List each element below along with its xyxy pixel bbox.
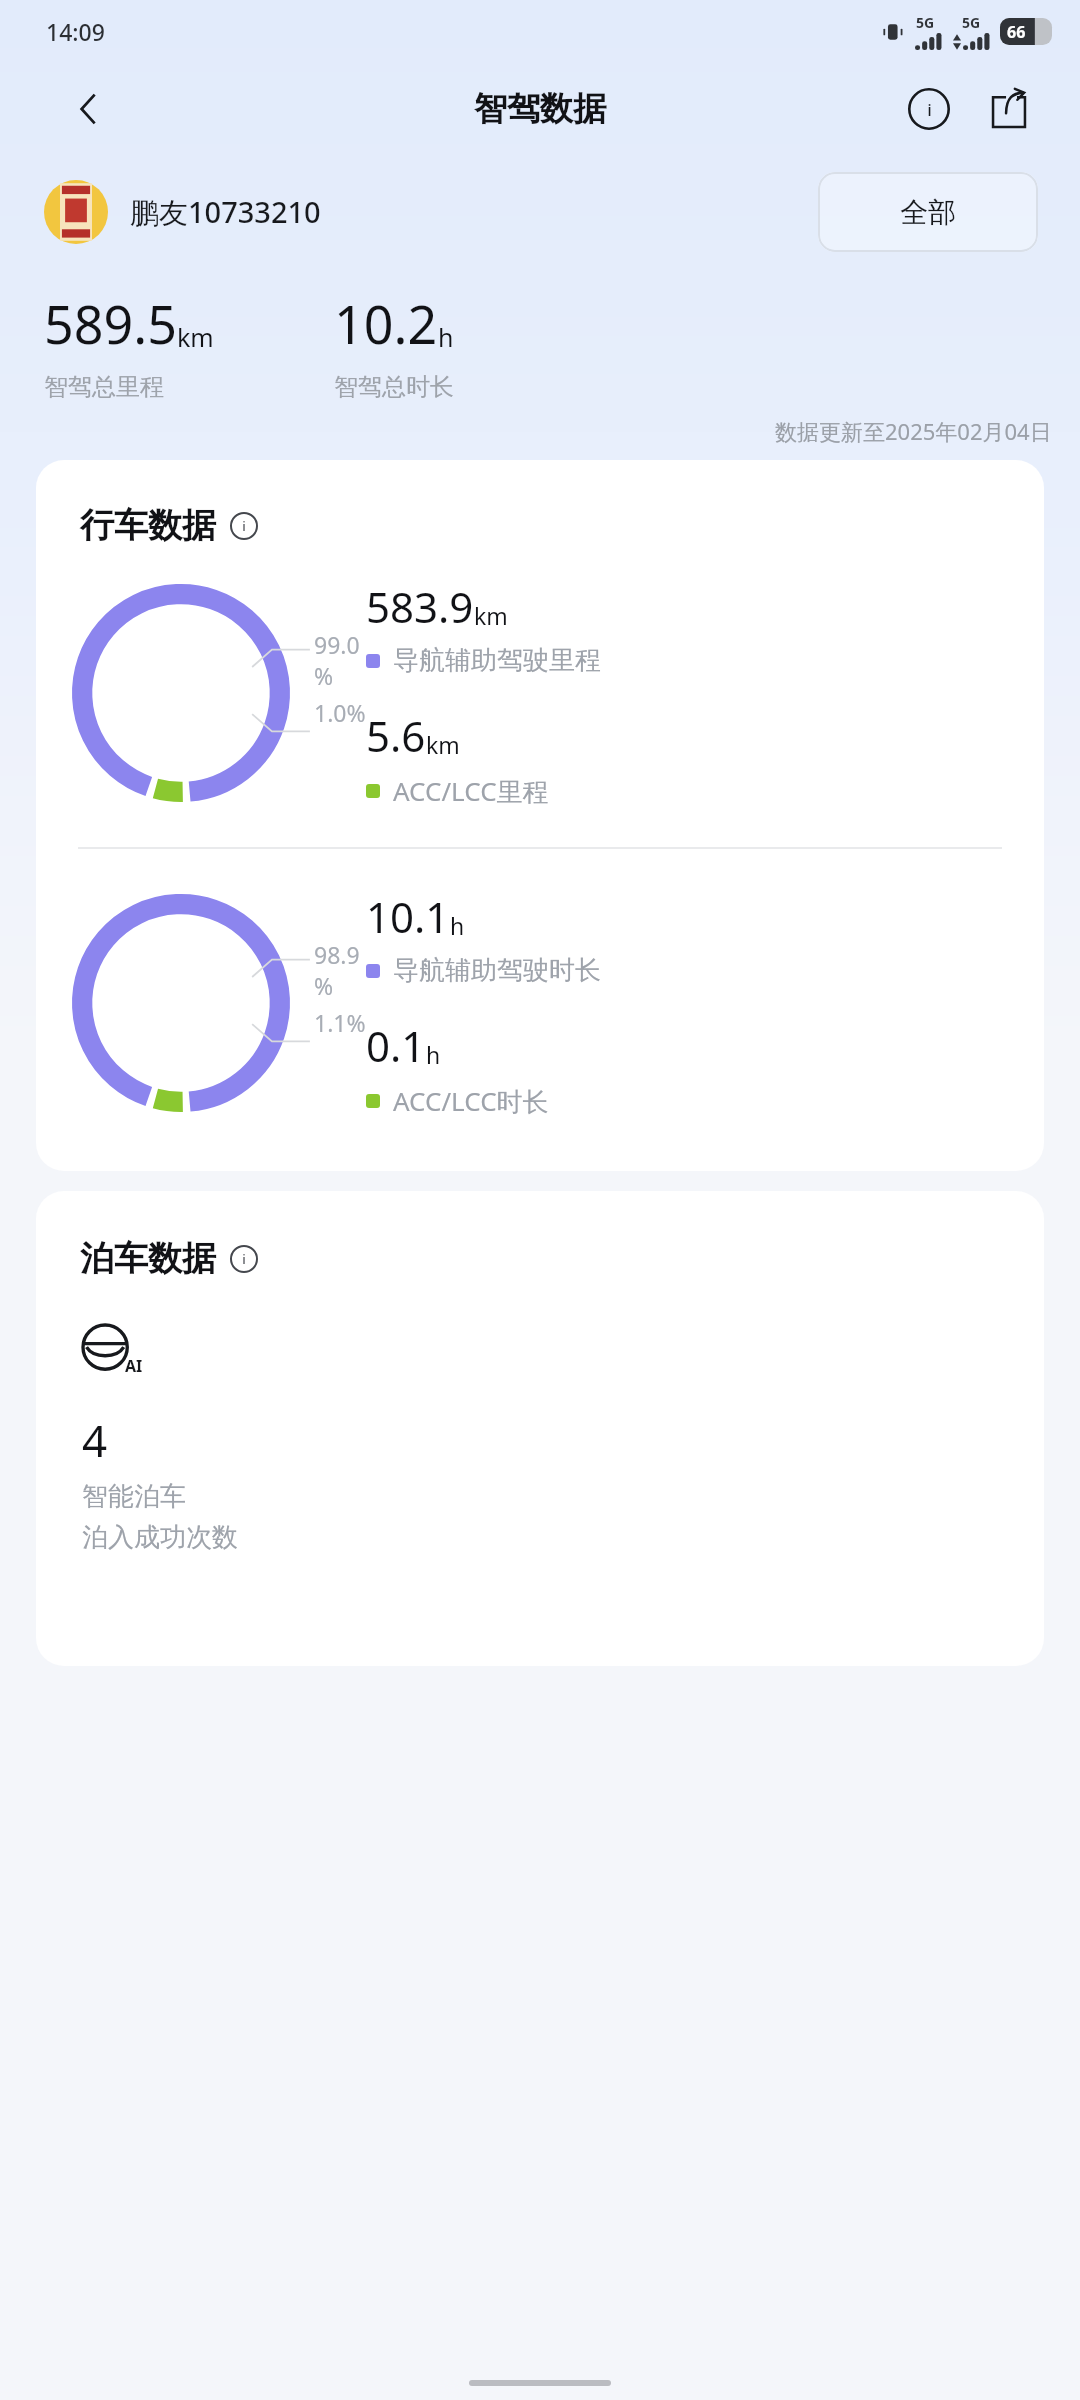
staticText: h — [426, 1039, 441, 1070]
staticText: ACC/LCC时长 — [393, 1083, 549, 1119]
staticText: 583.9 — [366, 578, 474, 635]
staticText: 10.2 — [334, 288, 438, 359]
staticText: 泊入成功次数 — [82, 1521, 238, 1554]
staticText: 智驾总时长 — [334, 372, 454, 402]
staticText: 5G — [916, 13, 935, 32]
staticText: 14:09 — [46, 16, 105, 47]
staticText: 5.6 — [366, 707, 426, 764]
staticText: 4 — [82, 1410, 108, 1470]
button[interactable]: 行车数据 — [80, 504, 258, 547]
staticText: 导航辅助驾驶时长 — [393, 954, 601, 987]
staticText: 98.9% — [314, 939, 366, 1001]
staticText: km — [426, 729, 460, 760]
button[interactable]: Share — [980, 80, 1038, 138]
staticText: 10.1 — [366, 888, 450, 945]
staticText: 全部 — [900, 195, 956, 230]
staticText: 1.0% — [314, 697, 366, 728]
button[interactable]: 泊车数据 — [80, 1237, 258, 1280]
button[interactable]: 全部 — [818, 172, 1038, 252]
staticText: 99.0% — [314, 629, 366, 691]
staticText: AI — [125, 1355, 143, 1377]
staticText: i — [242, 1250, 246, 1268]
button[interactable]: 鹏友10733210 — [44, 180, 818, 244]
staticText: 智驾总里程 — [44, 372, 164, 402]
staticText: 智能泊车 — [82, 1480, 186, 1513]
staticText: 66 — [1007, 21, 1026, 43]
button[interactable]: Info — [900, 80, 958, 138]
staticText: i — [242, 517, 246, 535]
staticText: h — [438, 320, 454, 354]
staticText: km — [177, 320, 214, 354]
staticText: i — [927, 98, 932, 121]
staticText: 数据更新至2025年02月04日 — [775, 416, 1052, 446]
staticText: ACC/LCC里程 — [393, 773, 549, 809]
staticText: 泊车数据 — [80, 1237, 216, 1280]
staticText: 鹏友10733210 — [130, 192, 321, 232]
staticText: h — [450, 910, 465, 941]
button[interactable]: Back — [60, 81, 116, 137]
staticText: 589.5 — [44, 288, 177, 359]
staticText: 智驾数据 — [474, 88, 606, 130]
staticText: 5G — [962, 13, 981, 32]
staticText: 行车数据 — [80, 504, 216, 547]
staticText: 1.1% — [314, 1007, 366, 1038]
staticText: km — [474, 600, 508, 631]
staticText: 导航辅助驾驶里程 — [393, 644, 601, 677]
staticText: 0.1 — [366, 1017, 426, 1074]
